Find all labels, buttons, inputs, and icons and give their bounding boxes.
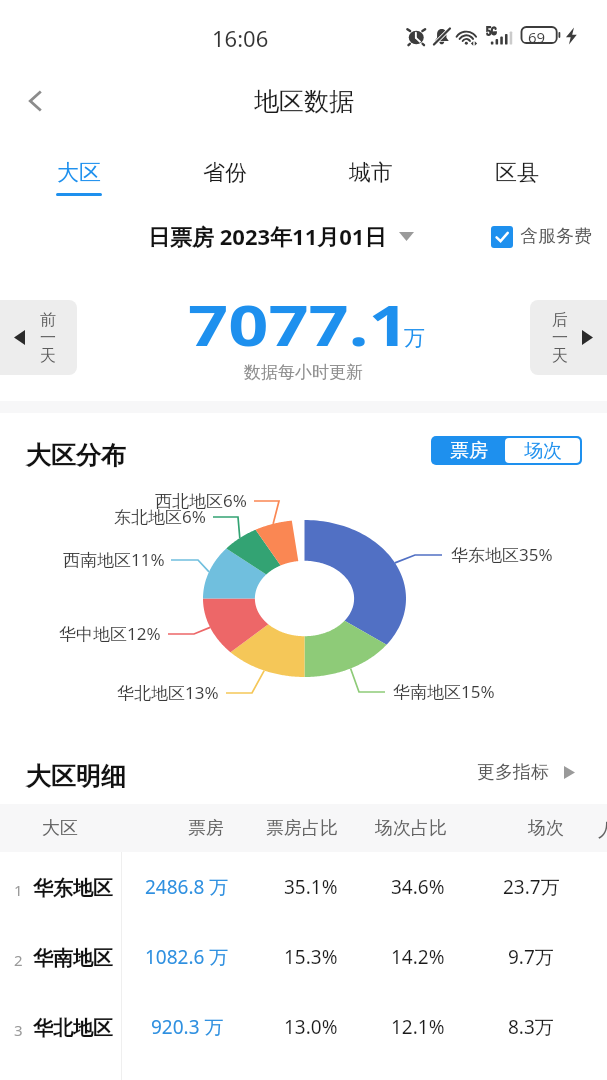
staticText: 华南地区15% xyxy=(393,680,495,703)
button[interactable]: 1 xyxy=(0,852,607,922)
staticText: 7077.1 xyxy=(188,286,409,362)
staticText: 场次 xyxy=(524,439,562,463)
staticText: 大区 xyxy=(57,159,101,187)
staticText: 地区数据 xyxy=(254,86,354,117)
staticText: 含服务费 xyxy=(520,225,592,248)
staticText: 大区明细 xyxy=(26,761,126,792)
staticText: 数据每小时更新 xyxy=(244,362,363,383)
staticText: 西南地区11% xyxy=(63,548,165,571)
button[interactable]: 大区 xyxy=(6,140,152,202)
button[interactable]: 前一天 xyxy=(0,300,77,375)
button[interactable]: Back xyxy=(8,62,64,140)
staticText: 华东地区 xyxy=(33,876,113,901)
staticText: 后 一 天 xyxy=(552,310,568,366)
button[interactable]: 票房 xyxy=(433,438,505,463)
staticText: 12.1% xyxy=(391,1014,445,1040)
staticText: 区县 xyxy=(495,159,539,187)
button[interactable]: 场次 xyxy=(505,438,580,463)
staticText: 1 xyxy=(14,880,23,900)
staticText: 16:06 xyxy=(212,23,269,53)
staticText: 票房 xyxy=(450,439,488,463)
button[interactable]: 后一天 xyxy=(530,300,607,375)
staticText: 2486.8 万 xyxy=(145,874,229,900)
staticText: 华东地区35% xyxy=(451,543,553,566)
staticText: 大区分布 xyxy=(26,440,126,471)
button[interactable]: 含服务费 xyxy=(491,225,592,248)
button[interactable]: 日票房 2023年11月01日 xyxy=(148,221,414,251)
staticText: 华北地区 xyxy=(33,1016,113,1041)
button[interactable]: 省份 xyxy=(152,140,298,202)
staticText: 华南地区 xyxy=(33,946,113,971)
staticText: 23.7万 xyxy=(503,874,560,900)
staticText: 35.1% xyxy=(284,874,338,900)
staticText: 8.3万 xyxy=(508,1014,554,1040)
staticText: 前 一 天 xyxy=(40,310,56,366)
staticText: 票房 xyxy=(188,817,224,840)
staticText: 34.6% xyxy=(391,874,445,900)
staticText: 场次 xyxy=(528,817,564,840)
staticText: 69 xyxy=(528,27,546,47)
staticText: 场次占比 xyxy=(375,817,447,840)
staticText: 15.3% xyxy=(284,944,338,970)
staticText: 2 xyxy=(14,950,23,970)
staticText: 日票房 2023年11月01日 xyxy=(148,221,387,251)
staticText: 9.7万 xyxy=(508,944,554,970)
staticText: 城市 xyxy=(349,159,393,187)
staticText: 13.0% xyxy=(284,1014,338,1040)
button[interactable]: 2 xyxy=(0,922,607,992)
button[interactable]: 更多指标 xyxy=(477,757,575,787)
staticText: 大区 xyxy=(42,817,78,840)
staticText: 万 xyxy=(404,325,425,351)
staticText: 华中地区12% xyxy=(59,622,161,645)
button[interactable]: 3 xyxy=(0,992,607,1062)
staticText: 西北地区6% xyxy=(155,489,247,512)
staticText: 华北地区13% xyxy=(117,681,219,704)
staticText: 14.2% xyxy=(391,944,445,970)
staticText: 3 xyxy=(14,1020,23,1040)
button[interactable]: 区县 xyxy=(444,140,590,202)
staticText: 920.3 万 xyxy=(151,1014,224,1040)
staticText: 人 xyxy=(598,819,607,842)
staticText: 东北地区6% xyxy=(114,505,206,528)
staticText: 更多指标 xyxy=(477,761,549,784)
staticText: 省份 xyxy=(203,159,247,187)
button[interactable]: 城市 xyxy=(298,140,444,202)
staticText: 1082.6 万 xyxy=(145,944,229,970)
staticText: 票房占比 xyxy=(266,817,338,840)
